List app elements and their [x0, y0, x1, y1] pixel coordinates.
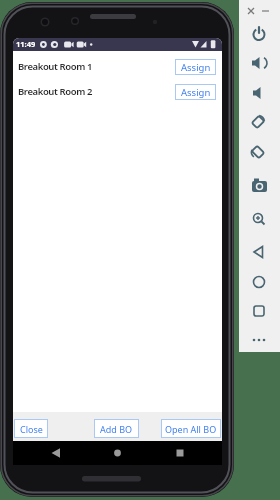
button[interactable]: [249, 176, 269, 196]
button[interactable]: [249, 22, 269, 42]
staticText: Breakout Room 2: [18, 85, 92, 98]
staticText: Assign: [181, 61, 211, 74]
staticText: Add BO: [100, 423, 133, 435]
button[interactable]: [249, 112, 269, 132]
button[interactable]: [168, 443, 188, 463]
button[interactable]: [249, 142, 269, 162]
staticText: Assign: [181, 86, 211, 99]
button[interactable]: [48, 443, 68, 463]
button[interactable]: Add BO: [94, 419, 139, 438]
button[interactable]: Assign: [175, 59, 216, 75]
button[interactable]: [249, 272, 269, 292]
staticText: Close: [20, 423, 43, 435]
button[interactable]: [249, 242, 269, 262]
button[interactable]: Open All BO: [161, 419, 221, 438]
button[interactable]: [249, 83, 269, 103]
button[interactable]: [108, 443, 128, 463]
button[interactable]: [249, 53, 269, 73]
staticText: Open All BO: [165, 423, 217, 435]
button[interactable]: [249, 330, 269, 350]
button[interactable]: [249, 209, 269, 229]
button[interactable]: Close: [14, 419, 48, 438]
staticText: 11:49: [16, 39, 36, 49]
staticText: Breakout Room 1: [18, 60, 92, 73]
button[interactable]: [249, 301, 269, 321]
button[interactable]: Assign: [175, 84, 216, 100]
